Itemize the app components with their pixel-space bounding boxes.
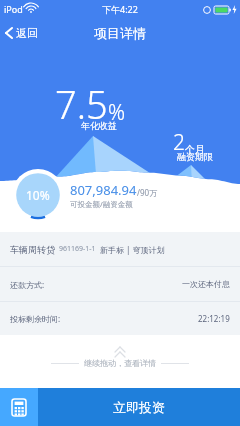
staticText: 个月 [185,143,205,156]
staticText: 2 [173,128,185,157]
staticText: 年化收益 [81,120,117,131]
staticText: 可投金额/融资金额 [70,199,133,209]
staticText: 返回 [16,26,38,40]
staticText: /90万 [137,187,158,198]
button[interactable]: 还款方式: [0,267,240,301]
button[interactable]: 车辆周转贷 [0,232,240,266]
staticText: 一次还本付息 [182,279,230,289]
button[interactable]: 投标剩余时间: [0,302,240,335]
staticText: 车辆周转贷 [10,244,55,255]
staticText: 7.5 [55,78,108,130]
staticText: 下午4:22 [102,3,138,15]
staticText: 继续拖动，查看详情 [84,358,156,368]
staticText: % [108,98,126,127]
staticText: 还款方式: [10,279,45,290]
staticText: 807,984.94 [70,181,137,199]
staticText: 10% [26,187,50,203]
staticText: 融资期限 [177,151,213,162]
button[interactable]: 返回 [0,22,44,44]
staticText: 项目详情 [94,25,146,41]
staticText: 新手标 | 穹顶计划 [100,244,165,255]
staticText: 961169-1-1 [59,244,96,254]
staticText: 投标剩余时间: [10,313,61,324]
staticText: iPod [4,3,23,15]
button[interactable]: 立即投资 [38,388,240,426]
staticText: 22:12:19 [198,313,230,324]
button[interactable]: Calculator [0,388,38,426]
staticText: 立即投资 [113,399,165,415]
